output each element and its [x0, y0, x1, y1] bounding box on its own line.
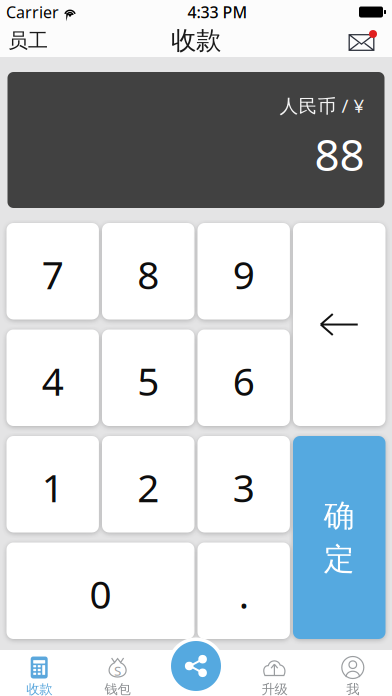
staticText: 升级	[261, 681, 287, 696]
staticText: 人民币 / ¥	[279, 93, 364, 118]
staticText: 钱包	[105, 681, 131, 696]
staticText: 1	[42, 462, 64, 513]
staticText: 88	[314, 125, 364, 183]
button[interactable]: 确	[293, 436, 385, 639]
button[interactable]: 5	[102, 329, 194, 426]
staticText: Carrier	[6, 1, 59, 23]
button[interactable]: 4	[6, 329, 99, 426]
button[interactable]: 2	[102, 436, 194, 532]
staticText: 8	[137, 249, 159, 300]
staticText: .	[239, 568, 249, 619]
button[interactable]: 1	[6, 436, 99, 532]
staticText: 收款	[26, 681, 52, 696]
button[interactable]: 我	[314, 650, 392, 696]
staticText: 7	[42, 249, 64, 300]
staticText: 4:33 PM	[187, 1, 247, 23]
staticText: 收款	[171, 25, 221, 56]
staticText: 4	[42, 355, 64, 406]
button[interactable]: 员工	[0, 24, 58, 57]
staticText: 定	[324, 540, 355, 578]
button[interactable]: 升级	[235, 650, 314, 696]
button[interactable]: 0	[6, 542, 194, 639]
button[interactable]: Share	[167, 637, 224, 694]
button[interactable]: .	[197, 542, 290, 639]
staticText: 0	[89, 568, 111, 619]
staticText: 我	[346, 681, 359, 696]
button[interactable]: 8	[102, 223, 194, 319]
staticText: S	[114, 662, 121, 679]
staticText: 2	[137, 462, 159, 513]
button[interactable]: 7	[6, 223, 99, 319]
button[interactable]: 3	[197, 436, 290, 532]
button[interactable]: 收款	[0, 650, 78, 696]
button[interactable]: S	[78, 650, 157, 696]
staticText: 员工	[8, 28, 48, 53]
staticText: 9	[233, 249, 255, 300]
staticText: 6	[233, 355, 255, 406]
staticText: 5	[137, 355, 159, 406]
button[interactable]: 6	[197, 329, 290, 426]
staticText: 3	[233, 462, 255, 513]
button[interactable]: Messages	[336, 24, 392, 57]
staticText: 确	[324, 497, 355, 534]
button[interactable]: 9	[197, 223, 290, 319]
button[interactable]: Delete	[293, 223, 385, 426]
